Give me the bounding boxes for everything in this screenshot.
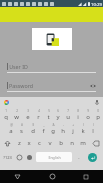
button[interactable]: Enter <box>83 150 102 164</box>
staticText: English <box>48 155 61 160</box>
button[interactable]: 4 <box>33 108 43 122</box>
button[interactable]: 3 <box>22 108 33 122</box>
button[interactable]: # <box>16 122 27 136</box>
button[interactable]: Home <box>35 170 69 183</box>
button[interactable]: x <box>24 136 34 150</box>
button[interactable]: Emoji <box>14 150 24 164</box>
button[interactable]: c <box>34 136 44 150</box>
staticText: m <box>80 139 86 147</box>
staticText: 5 <box>48 109 50 113</box>
staticText: l <box>92 127 94 135</box>
staticText: x <box>27 139 31 147</box>
staticText: 7 <box>67 109 69 113</box>
staticText: i <box>77 113 79 121</box>
staticText: k <box>81 127 85 135</box>
staticText: z <box>18 139 21 147</box>
staticText: @ <box>10 123 13 127</box>
staticText: + <box>72 123 74 127</box>
button[interactable]: v <box>44 136 55 150</box>
staticText: 1 <box>5 109 7 113</box>
staticText: 3 <box>27 109 29 113</box>
staticText: a <box>9 127 13 135</box>
staticText: _ <box>43 123 45 127</box>
button[interactable]: _ <box>38 122 48 136</box>
button[interactable]: 0 <box>93 108 103 122</box>
button[interactable]: + <box>68 122 78 136</box>
button[interactable]: Google <box>3 99 10 106</box>
staticText: d <box>31 127 35 135</box>
staticText: 0 <box>97 109 99 113</box>
button[interactable]: Password <box>7 82 96 92</box>
staticText: r <box>37 113 40 121</box>
button[interactable]: - <box>58 122 68 136</box>
button[interactable]: b <box>55 136 66 150</box>
button[interactable]: n <box>66 136 77 150</box>
button[interactable]: z <box>14 136 24 150</box>
staticText: t <box>47 113 50 121</box>
button[interactable]: English <box>36 152 72 162</box>
button[interactable]: 1 <box>0 108 11 122</box>
button[interactable]: m <box>77 136 88 150</box>
button[interactable]: ?123 <box>1 150 14 164</box>
staticText: 6 <box>57 109 59 113</box>
staticText: $ <box>32 123 34 127</box>
button[interactable]: & <box>48 122 58 136</box>
button[interactable]: $ <box>27 122 38 136</box>
staticText: 4 <box>38 109 40 113</box>
staticText: h <box>61 127 65 135</box>
button[interactable]: ( <box>78 122 88 136</box>
button[interactable]: Recents <box>69 170 103 183</box>
staticText: . <box>78 154 80 161</box>
staticText: j <box>72 127 74 135</box>
staticText: o <box>86 113 90 121</box>
button[interactable]: 9 <box>83 108 93 122</box>
button[interactable]: Back <box>0 170 35 183</box>
button[interactable]: Keyboard settings <box>24 150 34 164</box>
staticText: 9 <box>87 109 89 113</box>
staticText: 8 <box>77 109 79 113</box>
staticText: User ID <box>9 63 28 70</box>
staticText: Password <box>9 82 33 89</box>
staticText: - <box>63 123 64 127</box>
button[interactable]: User ID <box>7 63 96 73</box>
button[interactable]: 5 <box>43 108 53 122</box>
staticText: f <box>42 127 45 135</box>
staticText: u <box>66 113 70 121</box>
other: Show password <box>90 84 96 88</box>
staticText: # <box>21 123 23 127</box>
staticText: g <box>51 127 55 135</box>
staticText: ( <box>83 123 84 127</box>
staticText: w <box>14 113 19 121</box>
staticText: q <box>4 113 8 121</box>
staticText: p <box>96 113 100 121</box>
button[interactable]: 7 <box>63 108 73 122</box>
staticText: 10:29 <box>91 1 102 7</box>
staticText: y <box>56 113 60 121</box>
button[interactable]: 6 <box>53 108 63 122</box>
button[interactable]: Shift <box>0 136 14 150</box>
staticText: c <box>38 139 41 147</box>
button[interactable]: Backspace <box>88 136 103 150</box>
staticText: v <box>48 139 52 147</box>
button[interactable]: 8 <box>73 108 83 122</box>
button[interactable]: ) <box>88 122 98 136</box>
staticText: e <box>26 113 30 121</box>
staticText: b <box>59 139 63 147</box>
staticText: ?123 <box>3 155 12 160</box>
button[interactable]: @ <box>5 122 16 136</box>
button[interactable]: Voice input <box>93 99 100 106</box>
staticText: n <box>70 139 74 147</box>
staticText: 2 <box>16 109 18 113</box>
button[interactable] <box>32 28 72 50</box>
staticText: s <box>20 127 23 135</box>
staticText: ) <box>93 123 94 127</box>
button[interactable]: 2 <box>11 108 22 122</box>
staticText: & <box>52 123 55 127</box>
